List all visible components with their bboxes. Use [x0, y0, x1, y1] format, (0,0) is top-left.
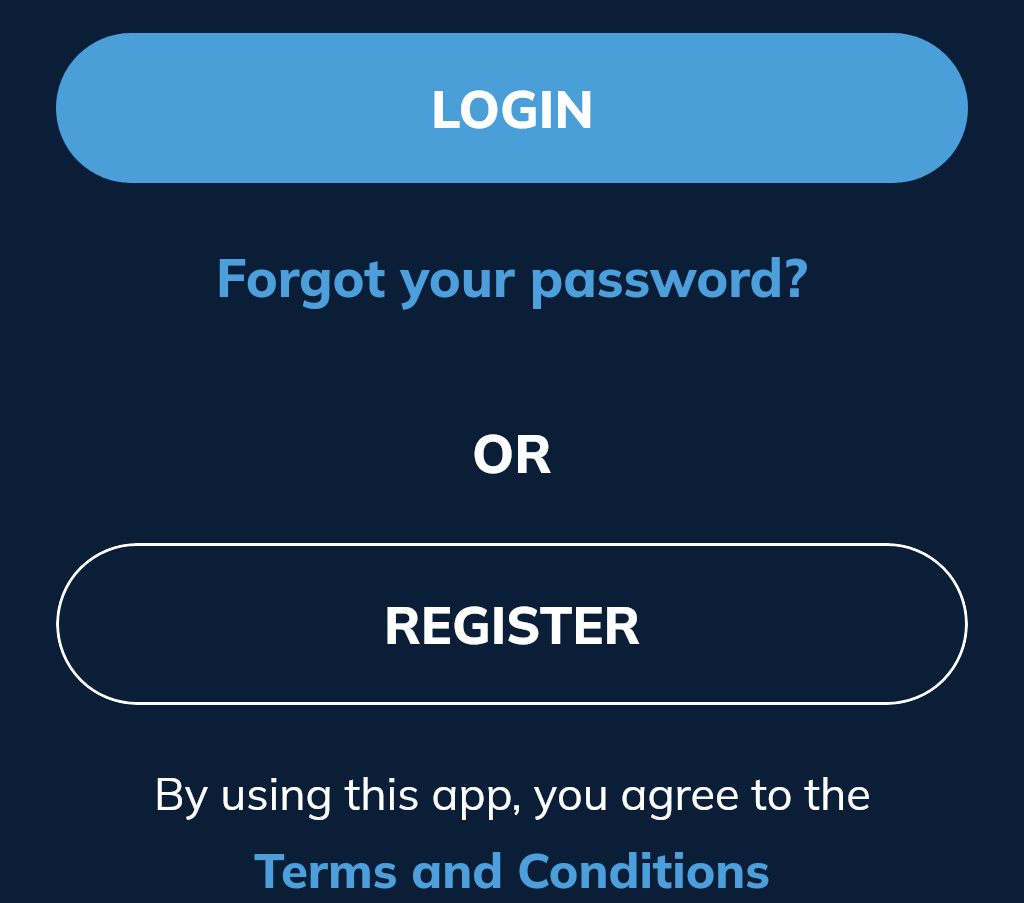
button[interactable]: LOGIN — [56, 33, 968, 183]
staticText: OR — [472, 420, 552, 487]
button[interactable]: Forgot your password? — [216, 244, 809, 311]
button[interactable]: REGISTER — [56, 543, 968, 705]
staticText: By using this app, you agree to the — [154, 765, 871, 821]
button[interactable]: Terms and Conditions — [254, 839, 770, 900]
staticText: REGISTER — [384, 592, 641, 657]
staticText: LOGIN — [431, 76, 594, 141]
